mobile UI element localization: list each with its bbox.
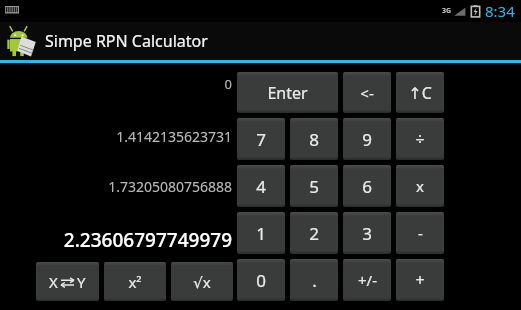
staticText: -: [418, 223, 423, 243]
staticText: x²: [128, 272, 142, 292]
staticText: Enter: [267, 82, 308, 104]
button[interactable]: +/-: [343, 259, 391, 301]
staticText: ↑C: [408, 82, 432, 104]
button[interactable]: x²: [104, 262, 166, 301]
button[interactable]: 1: [237, 212, 285, 254]
staticText: 1: [256, 222, 266, 245]
staticText: 1.4142135623731: [116, 127, 232, 146]
staticText: 7: [256, 128, 266, 151]
button[interactable]: 0: [237, 259, 285, 301]
button[interactable]: 2: [290, 212, 338, 254]
staticText: .: [312, 269, 317, 292]
button[interactable]: 7: [237, 118, 285, 160]
staticText: 2.23606797749979: [63, 227, 232, 253]
staticText: 0: [224, 75, 232, 93]
staticText: Y: [77, 272, 86, 292]
button[interactable]: X: [36, 262, 99, 301]
button[interactable]: .: [290, 259, 338, 301]
staticText: Simpe RPN Calculator: [45, 30, 208, 52]
button[interactable]: 4: [237, 165, 285, 207]
staticText: 3G: [442, 6, 452, 16]
staticText: X: [49, 272, 58, 292]
button[interactable]: +: [396, 259, 444, 301]
button[interactable]: <-: [343, 72, 391, 113]
button[interactable]: ÷: [396, 118, 444, 160]
button[interactable]: Enter: [237, 72, 338, 113]
staticText: 5: [309, 175, 319, 198]
staticText: √x: [193, 272, 211, 292]
staticText: x: [416, 176, 424, 196]
button[interactable]: ↑C: [396, 72, 444, 113]
staticText: 8:34: [485, 1, 515, 21]
staticText: 6: [362, 175, 372, 198]
staticText: 3: [362, 222, 372, 245]
staticText: 4: [256, 175, 266, 198]
button[interactable]: 3: [343, 212, 391, 254]
button[interactable]: 6: [343, 165, 391, 207]
button[interactable]: 5: [290, 165, 338, 207]
button[interactable]: -: [396, 212, 444, 254]
button[interactable]: x: [396, 165, 444, 207]
button[interactable]: Simpe RPN Calculator: [0, 22, 521, 60]
button[interactable]: 8: [290, 118, 338, 160]
staticText: 9: [362, 128, 372, 151]
button[interactable]: 9: [343, 118, 391, 160]
staticText: +: [415, 269, 425, 291]
staticText: 1.73205080756888: [108, 177, 232, 196]
button[interactable]: √x: [171, 262, 233, 301]
staticText: ÷: [415, 128, 425, 150]
staticText: 8: [309, 128, 319, 151]
staticText: 0: [256, 269, 266, 292]
staticText: <-: [360, 83, 374, 103]
staticText: +/-: [358, 270, 377, 290]
other: Swap X and Y: [61, 277, 74, 288]
staticText: 2: [309, 222, 319, 245]
